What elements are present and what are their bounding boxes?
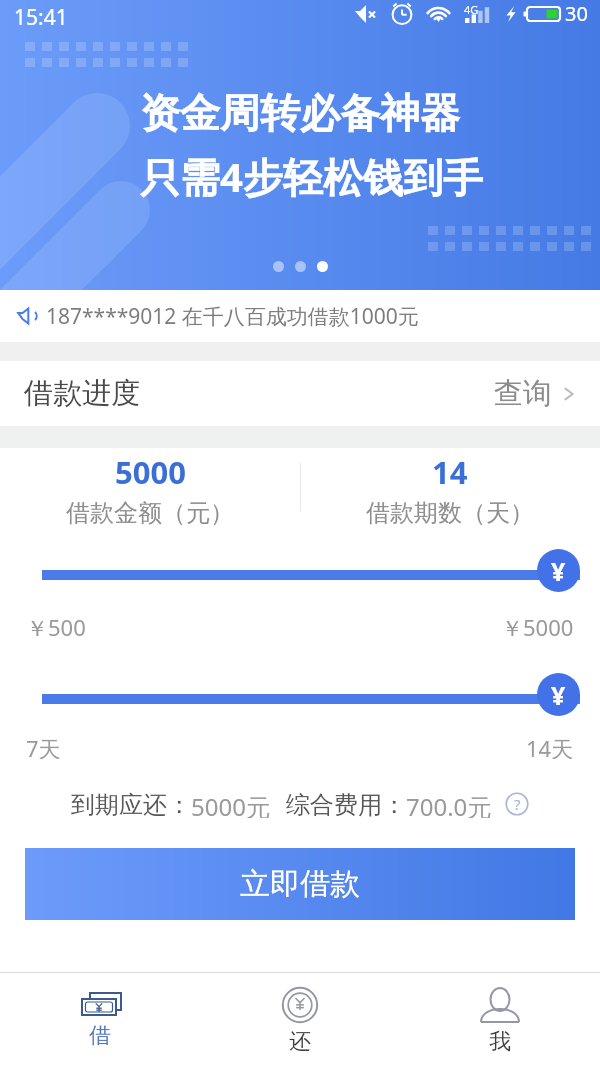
staticText: ¥ bbox=[551, 554, 566, 588]
button[interactable]: 费用说明 bbox=[505, 792, 529, 816]
staticText: ￥5000 bbox=[501, 612, 574, 638]
staticText: 还 bbox=[289, 1028, 311, 1056]
button[interactable]: 借款进度 bbox=[0, 361, 600, 426]
staticText: 到期应还： bbox=[71, 790, 191, 818]
staticText: 资金周转必备神器 bbox=[140, 88, 460, 138]
button[interactable]: 187****9012 在千八百成功借款1000元 bbox=[0, 290, 600, 342]
staticText: 我 bbox=[489, 1028, 511, 1056]
staticText: ? bbox=[514, 794, 521, 814]
button[interactable]: 还 bbox=[200, 973, 400, 1067]
staticText: 4G bbox=[464, 2, 479, 17]
staticText: 30 bbox=[565, 0, 588, 27]
staticText: ¥ bbox=[551, 678, 566, 712]
staticText: 14 bbox=[432, 451, 468, 493]
button[interactable]: 借 bbox=[0, 973, 200, 1067]
staticText: 5000元 bbox=[191, 790, 270, 818]
staticText: 15:41 bbox=[14, 3, 68, 32]
staticText: 借款进度 bbox=[24, 375, 140, 412]
staticText: 只需4步轻松钱到手 bbox=[140, 149, 483, 204]
staticText: 查询 bbox=[494, 375, 552, 412]
button[interactable]: 调整借款金额 bbox=[537, 549, 580, 592]
staticText: 综合费用： bbox=[286, 790, 406, 818]
staticText: 借 bbox=[89, 1022, 111, 1050]
staticText: 14天 bbox=[526, 733, 574, 759]
staticText: 7天 bbox=[26, 733, 61, 759]
staticText: ￥500 bbox=[26, 612, 86, 638]
staticText: 700.0元 bbox=[406, 790, 492, 818]
button[interactable]: 我 bbox=[400, 973, 600, 1067]
staticText: 立即借款 bbox=[240, 865, 360, 903]
staticText: 187****9012 在千八百成功借款1000元 bbox=[46, 302, 419, 331]
button[interactable]: 调整借款期数 bbox=[537, 673, 580, 716]
staticText: 5000 bbox=[115, 451, 186, 493]
staticText: 借款金额（元） bbox=[66, 498, 234, 528]
button[interactable]: 立即借款 bbox=[25, 848, 575, 920]
staticText: 借款期数（天） bbox=[366, 498, 534, 528]
